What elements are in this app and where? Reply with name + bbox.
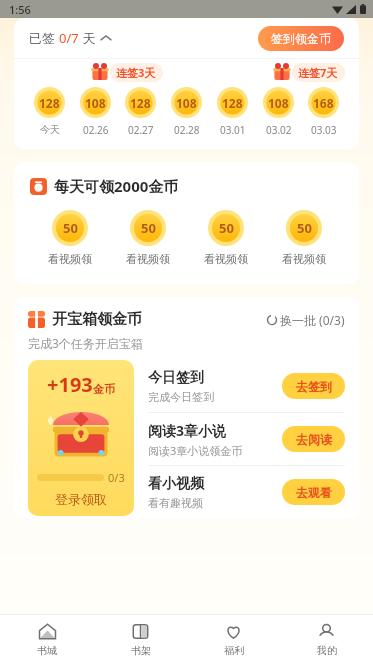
button[interactable]: 108 (262, 87, 295, 137)
staticText: +193 (47, 371, 93, 398)
button[interactable]: 128 (216, 87, 249, 137)
staticText: 128 (39, 95, 60, 111)
staticText: 连签3天 (116, 65, 156, 80)
button[interactable]: 书城 (0, 615, 94, 663)
staticText: 03.02 (266, 123, 292, 137)
staticText: 福利 (224, 644, 244, 657)
button[interactable]: 去签到 (282, 373, 345, 399)
button[interactable]: 我的 (280, 615, 373, 663)
staticText: 02.26 (83, 123, 109, 137)
staticText: 金币 (93, 382, 115, 396)
staticText: 50 (141, 219, 156, 237)
staticText: 看视频领 (48, 252, 92, 266)
staticText: 完成3个任务开启宝箱 (28, 335, 143, 351)
staticText: 去阅读 (296, 432, 332, 447)
staticText: 168 (313, 95, 334, 111)
button[interactable]: 50 (187, 210, 265, 266)
button[interactable]: 看小视频 (148, 466, 345, 518)
staticText: 去观看 (296, 485, 332, 500)
staticText: 0/7 (59, 29, 79, 47)
button[interactable]: 福利 (187, 615, 280, 663)
staticText: 今日签到 (148, 369, 204, 387)
staticText: 50 (63, 219, 78, 237)
button[interactable]: 128 (33, 87, 66, 136)
staticText: 登录领取 (55, 491, 107, 507)
staticText: 108 (176, 95, 197, 111)
button[interactable]: +193 (28, 360, 134, 516)
button[interactable]: 书架 (94, 615, 187, 663)
staticText: 02.27 (128, 123, 154, 137)
staticText: 0/3 (108, 470, 125, 485)
staticText: 今天 (40, 123, 60, 136)
button[interactable]: 签到领金币 (258, 26, 344, 51)
staticText: 开宝箱领金币 (52, 310, 142, 329)
staticText: 阅读3章小说领金币 (148, 443, 243, 458)
staticText: 128 (222, 95, 243, 111)
staticText: 书架 (131, 644, 151, 657)
button[interactable]: 50 (109, 210, 187, 266)
staticText: 我的 (317, 644, 337, 657)
staticText: 看小视频 (148, 475, 204, 493)
staticText: 连签7天 (298, 65, 338, 80)
staticText: 完成今日签到 (148, 390, 214, 404)
staticText: 去签到 (296, 379, 332, 394)
staticText: 03.01 (220, 123, 246, 137)
staticText: 看视频领 (126, 252, 170, 266)
button[interactable]: 50 (265, 210, 343, 266)
staticText: 1:56 (9, 2, 31, 17)
button[interactable]: 50 (30, 210, 109, 266)
staticText: 108 (268, 95, 289, 111)
staticText: 50 (297, 219, 312, 237)
button[interactable]: 108 (79, 87, 112, 137)
staticText: 看视频领 (204, 252, 248, 266)
staticText: 看有趣视频 (148, 496, 203, 510)
staticText: 天 (79, 29, 96, 47)
staticText: 阅读3章小说 (148, 421, 227, 440)
staticText: 02.28 (174, 123, 200, 137)
staticText: 书城 (37, 644, 57, 657)
staticText: 128 (130, 95, 151, 111)
staticText: 已签 (29, 29, 59, 47)
button[interactable]: 128 (124, 87, 157, 137)
staticText: 看视频领 (282, 252, 326, 266)
button[interactable]: 换一批 (0/3) (266, 312, 345, 328)
staticText: 换一批 (0/3) (280, 312, 345, 328)
button[interactable]: 去观看 (282, 479, 345, 505)
button[interactable]: 168 (307, 87, 340, 137)
staticText: 50 (219, 219, 234, 237)
button[interactable]: 阅读3章小说 (148, 413, 345, 465)
button[interactable]: 108 (170, 87, 203, 137)
button[interactable]: 已签 (29, 29, 111, 47)
staticText: 每天可领2000金币 (54, 176, 179, 196)
button[interactable]: 去阅读 (282, 426, 345, 452)
staticText: 签到领金币 (271, 31, 331, 46)
staticText: 108 (85, 95, 106, 111)
staticText: 03.03 (311, 123, 337, 137)
button[interactable]: 今日签到 (148, 360, 345, 412)
